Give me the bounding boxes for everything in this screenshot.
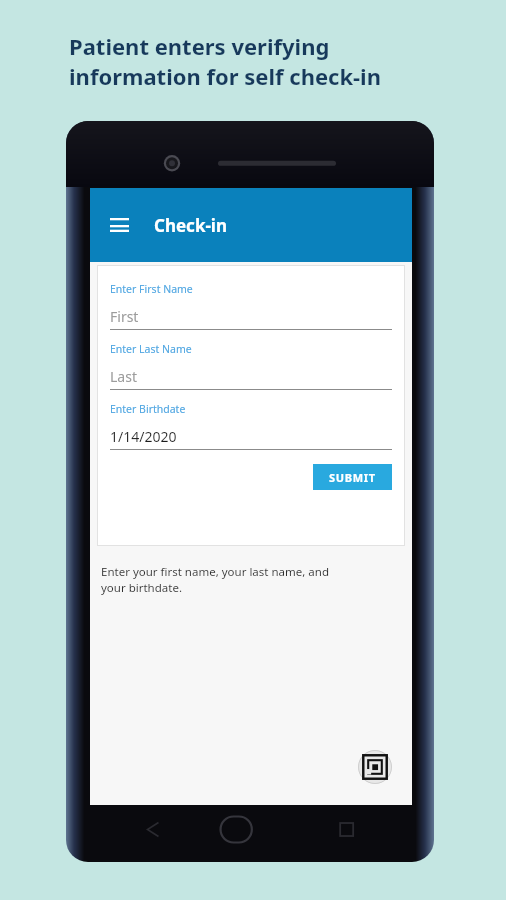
staticText: information for self check-in xyxy=(69,61,381,91)
staticText: 1/14/2020 xyxy=(110,427,177,446)
button[interactable]: SUBMIT xyxy=(313,464,392,490)
staticText: First xyxy=(110,307,139,326)
staticText: Enter First Name xyxy=(110,282,193,296)
staticText: Enter Birthdate xyxy=(110,402,186,416)
staticText: Last xyxy=(110,367,137,386)
staticText: SUBMIT xyxy=(329,470,376,485)
staticText: Enter Last Name xyxy=(110,342,192,356)
button[interactable]: NFC tap to check in xyxy=(358,750,392,784)
staticText: your birthdate. xyxy=(101,580,182,596)
staticText: Check-in xyxy=(154,214,227,237)
button[interactable]: Open navigation menu xyxy=(97,203,141,247)
staticText: Enter your first name, your last name, a… xyxy=(101,564,329,580)
staticText: Patient enters verifying xyxy=(69,31,330,61)
